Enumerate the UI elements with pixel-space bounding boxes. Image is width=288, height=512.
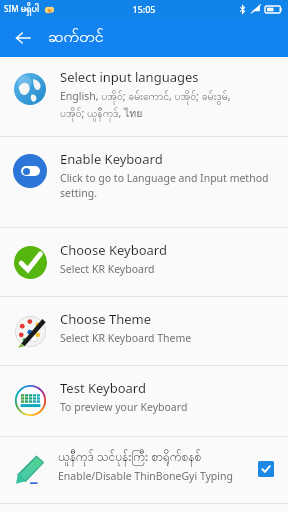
button[interactable]: ယူနီကုဒ် သင်ပုန်းကြီး စာရိုက်စနစ် (0, 437, 288, 503)
button[interactable]: Select input languages (0, 57, 288, 136)
staticText: ဆက်တင် (48, 26, 104, 50)
staticText: English, ပအိုဝ်; ခမ်းကောင်, ပအိုဝ်; ခမ်း… (60, 89, 231, 122)
button[interactable]: Back (6, 21, 40, 55)
staticText: Select KR Keyboard (60, 262, 155, 276)
staticText: 15:05 (132, 3, 156, 15)
staticText: Choose Keyboard (60, 241, 167, 259)
staticText: Choose Theme (60, 310, 152, 328)
button[interactable]: Choose Theme (0, 297, 288, 365)
button[interactable]: Choose Keyboard (0, 228, 288, 296)
button[interactable]: Enable Keyboard (0, 137, 288, 227)
staticText: Test Keyboard (60, 379, 146, 397)
staticText: Click to go to Language and Input method… (60, 171, 269, 200)
staticText: Select input languages (60, 68, 199, 86)
staticText: To preview your Keyboard (60, 400, 188, 414)
staticText: Enable/Disable ThinBoneGyi Typing (58, 469, 233, 483)
staticText: SIM မရှိပါ (4, 1, 40, 18)
staticText: Select KR Keyboard Theme (60, 331, 192, 345)
staticText: Enable Keyboard (60, 150, 163, 168)
button[interactable]: Test Keyboard (0, 366, 288, 436)
button[interactable]: Toggle ThinBoneGyi typing (254, 457, 278, 481)
staticText: ယူနီကုဒ် သင်ပုန်းကြီး စာရိုက်စနစ် (58, 448, 202, 467)
